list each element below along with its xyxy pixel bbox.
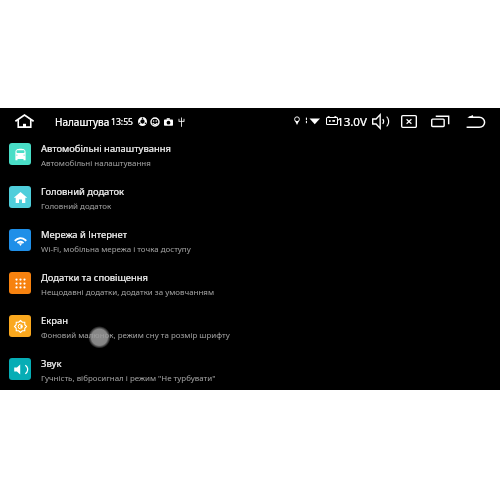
staticText: Гучність, вібросигнал і режим "Не турбув… — [41, 373, 216, 384]
staticText: Додатки та сповіщення — [41, 271, 148, 284]
button[interactable]: Screen off — [397, 111, 421, 132]
staticText: Wi-Fi, мобільна мережа і точка доступу — [41, 244, 191, 255]
staticText: Налаштува — [55, 115, 110, 129]
button[interactable]: Головний додаток — [0, 182, 500, 225]
staticText: Головний додаток — [41, 185, 125, 198]
button[interactable]: Home — [10, 107, 38, 134]
staticText: Фоновий малюнок, режим сну та розмір шри… — [41, 330, 230, 341]
staticText: Автомобільні налаштування — [41, 158, 151, 169]
staticText: Звук — [41, 357, 62, 370]
button[interactable]: Мережа й Інтернет — [0, 225, 500, 268]
staticText: Головний додаток — [41, 201, 112, 212]
staticText: 13.0V — [337, 114, 367, 130]
button[interactable]: Додатки та сповіщення — [0, 268, 500, 311]
button[interactable]: Автомобільні налаштування — [0, 139, 500, 182]
staticText: Автомобільні налаштування — [41, 142, 171, 155]
staticText: Нещодавні додатки, додатки за умовчанням — [41, 287, 215, 298]
button[interactable]: Volume — [369, 110, 391, 132]
staticText: 13:55 — [111, 116, 133, 128]
button[interactable]: Back — [462, 111, 489, 132]
button[interactable]: Екран — [0, 311, 500, 354]
button[interactable]: Recent apps — [427, 111, 453, 132]
staticText: Мережа й Інтернет — [41, 228, 128, 241]
button[interactable]: Звук — [0, 354, 500, 397]
staticText: Екран — [41, 314, 68, 327]
